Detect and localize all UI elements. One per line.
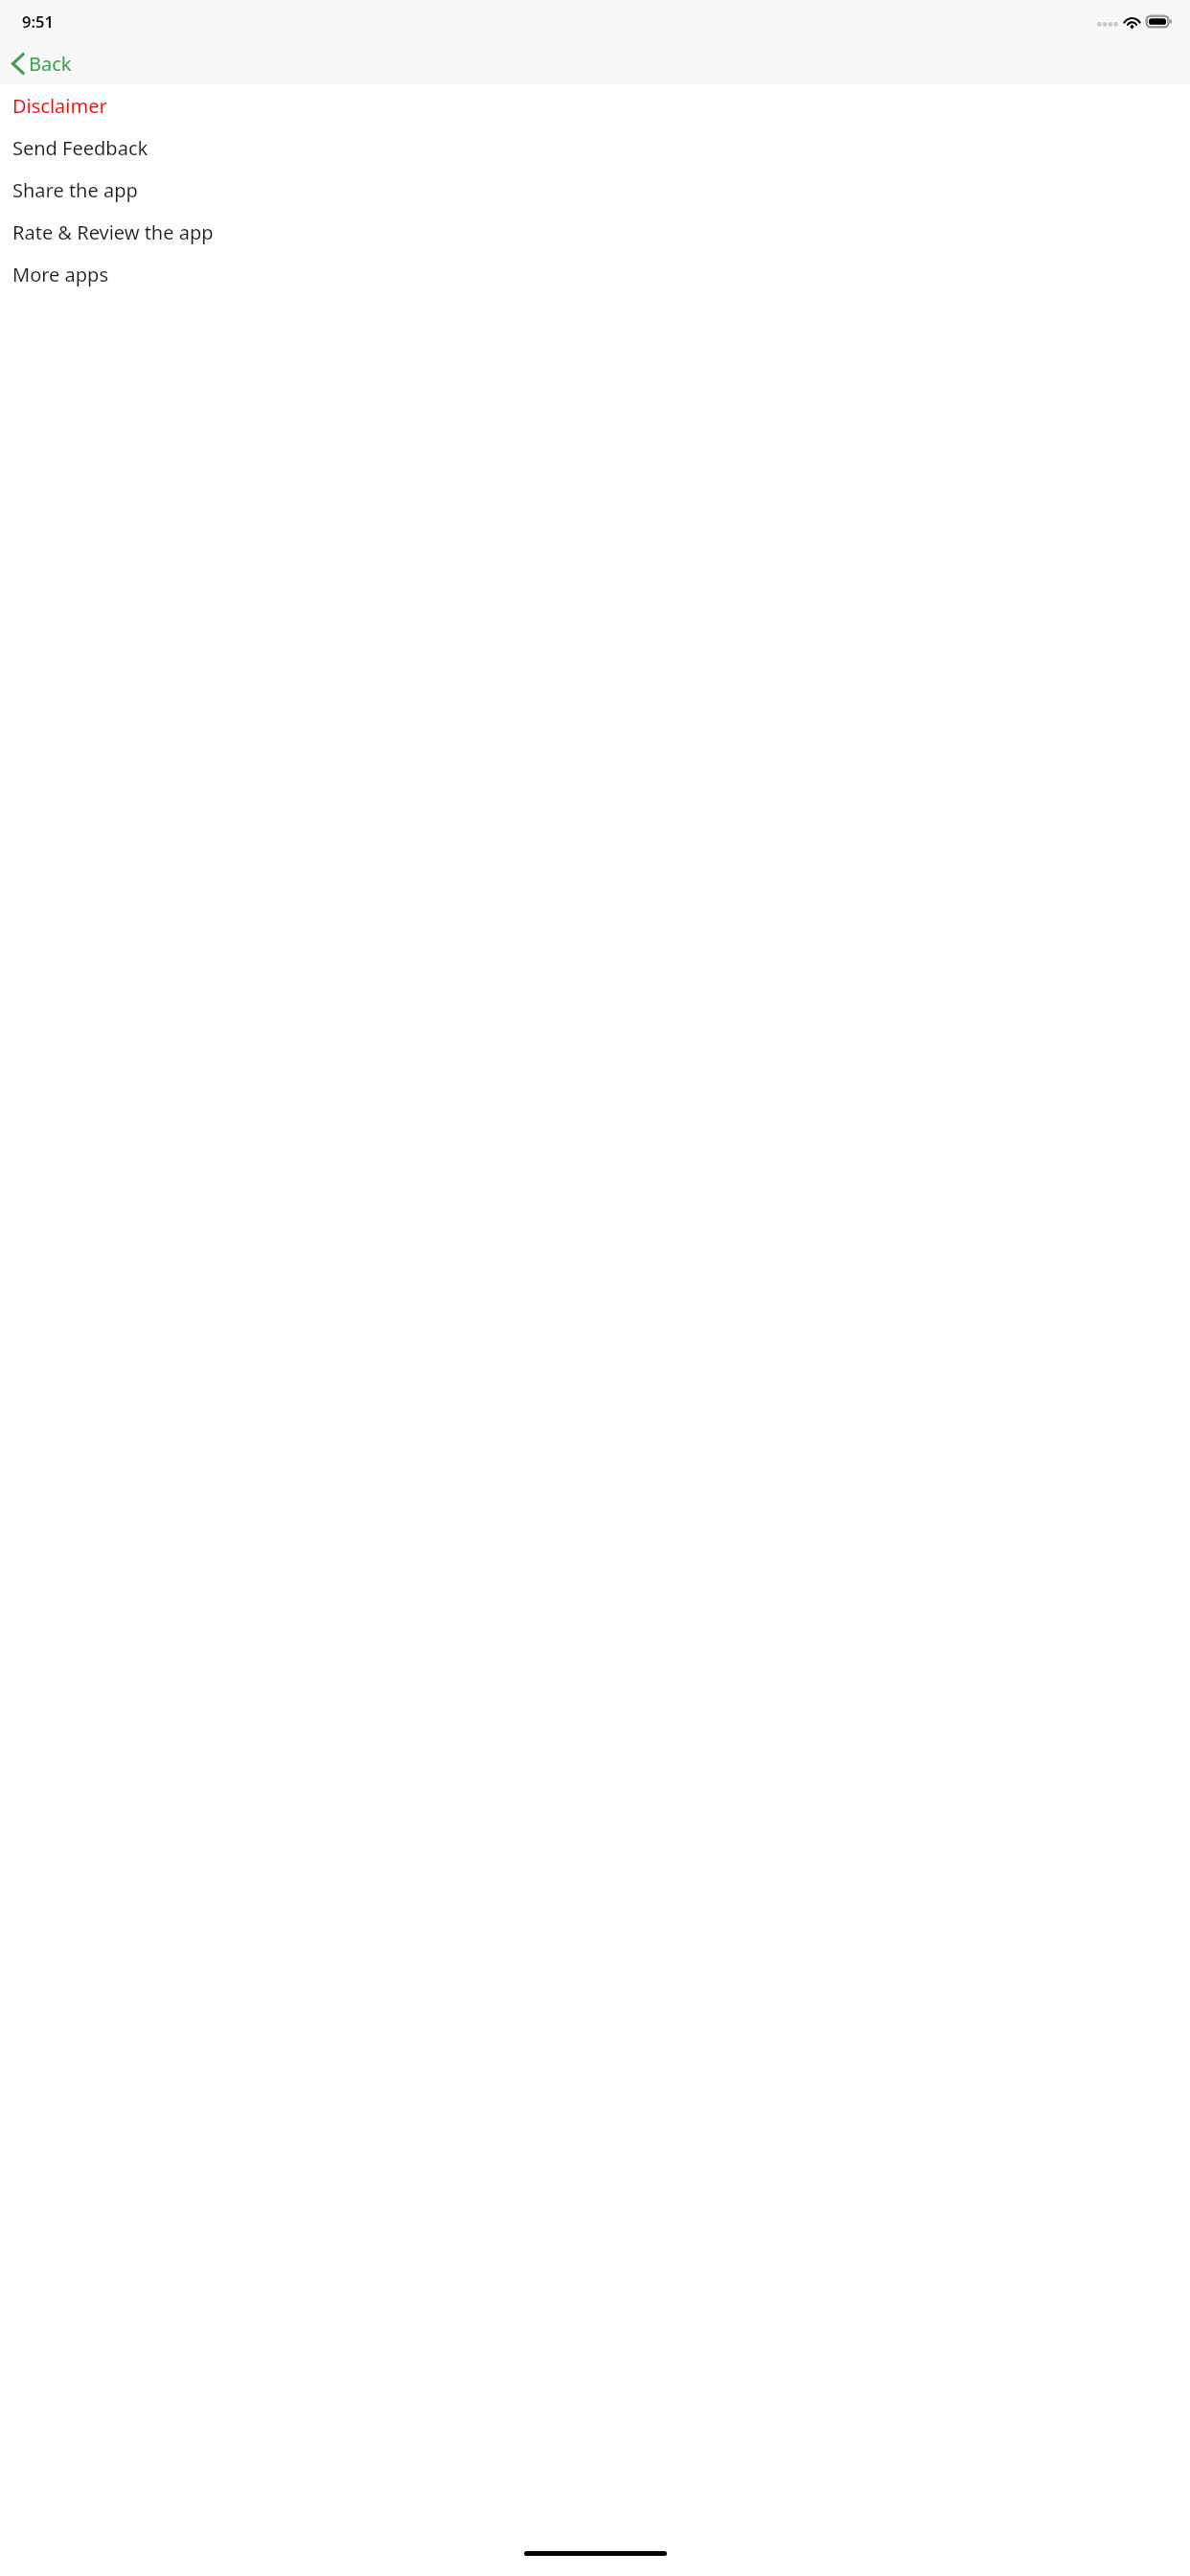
staticText: More apps [12, 262, 108, 287]
staticText: Back [29, 51, 72, 77]
staticText: Send Feedback [12, 135, 149, 161]
staticText: Rate & Review the app [12, 219, 214, 245]
staticText: Disclaimer [12, 93, 107, 119]
button[interactable]: Share the app [0, 169, 1190, 211]
button[interactable]: Send Feedback [0, 126, 1190, 169]
staticText: 9:51 [22, 11, 54, 32]
button[interactable]: Disclaimer [0, 84, 1190, 126]
button[interactable]: Back [0, 47, 85, 80]
button[interactable]: Rate & Review the app [0, 211, 1190, 253]
staticText: Share the app [12, 177, 138, 203]
button[interactable]: More apps [0, 253, 1190, 295]
